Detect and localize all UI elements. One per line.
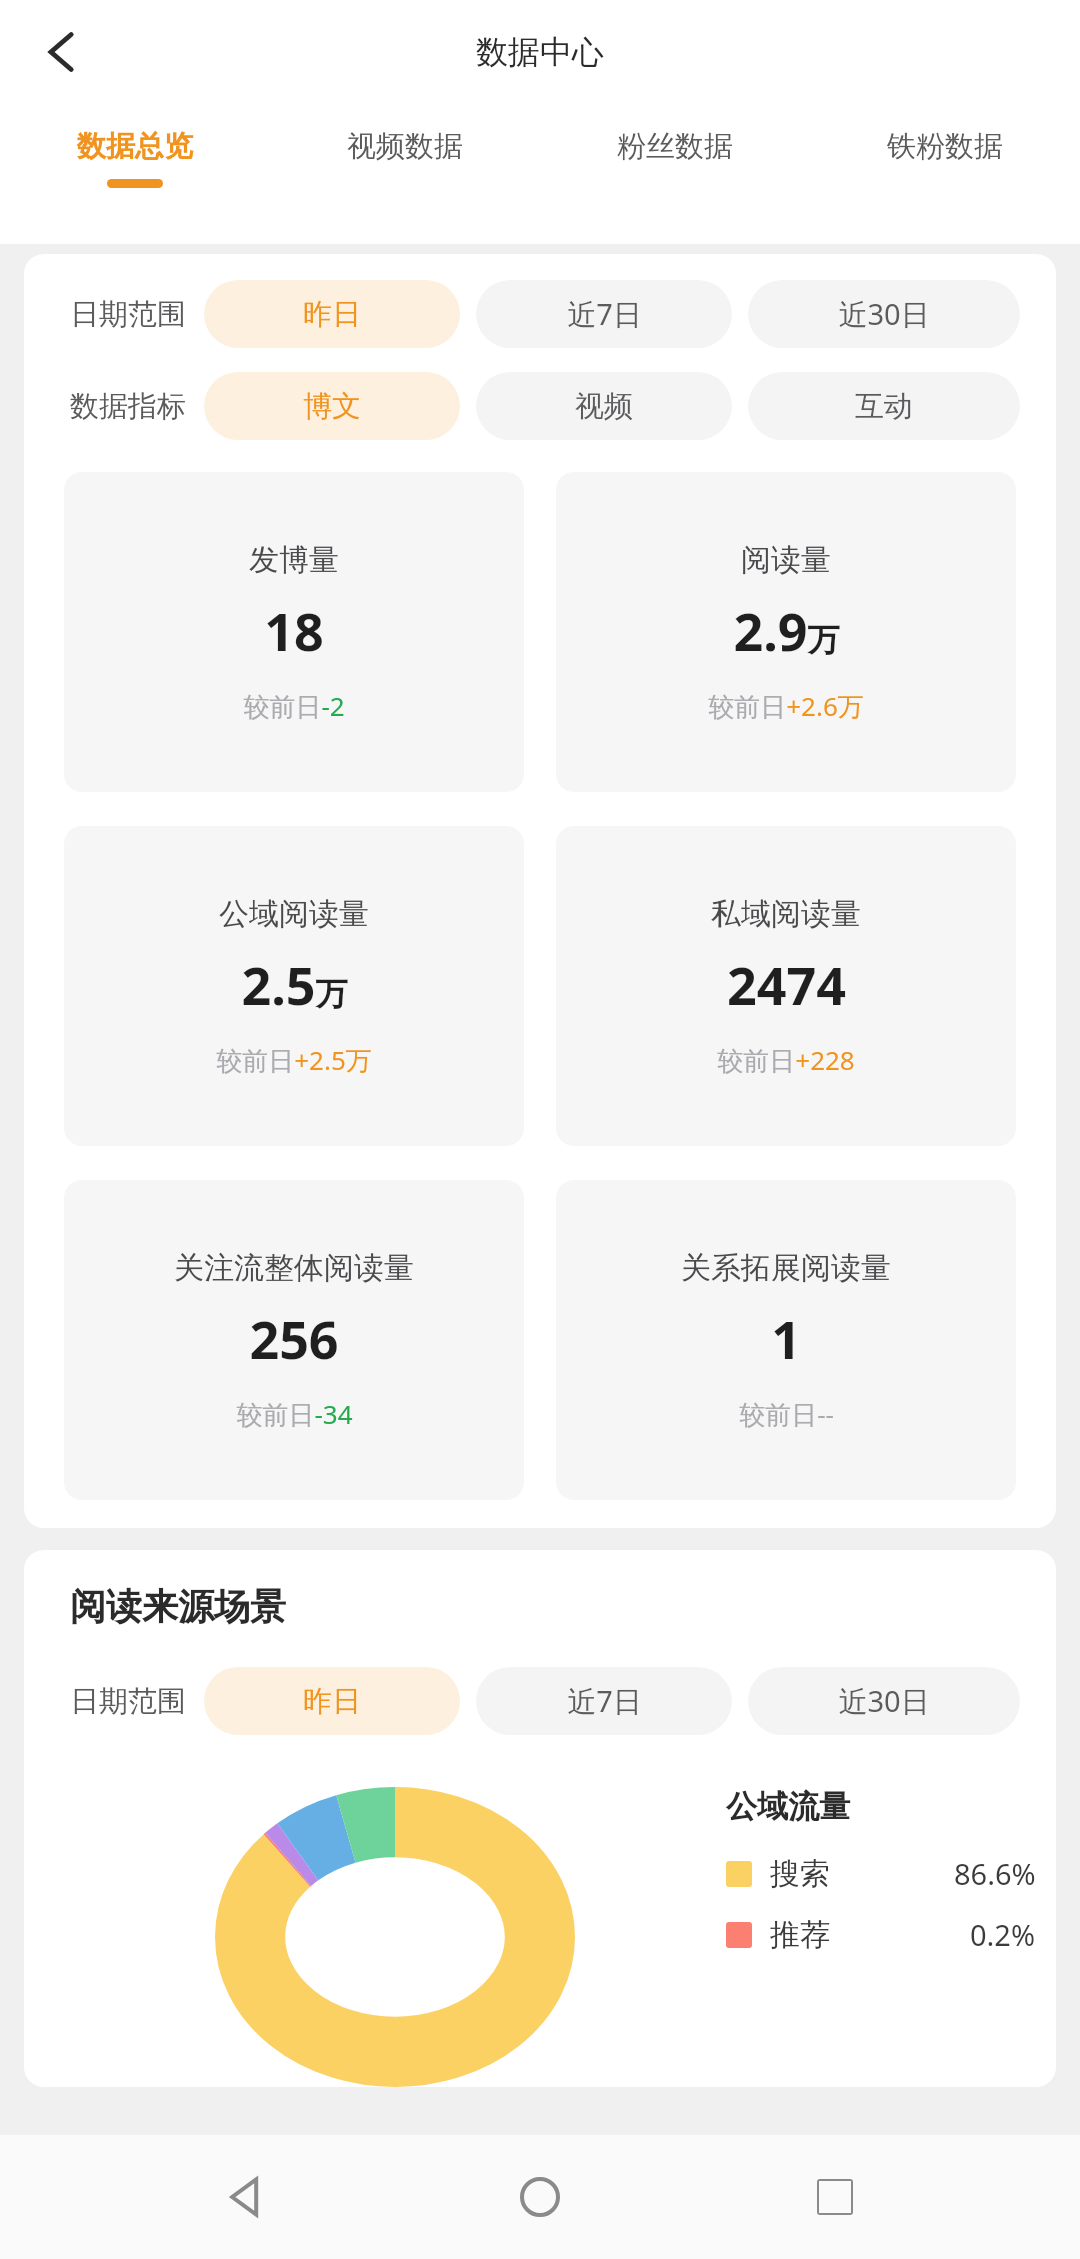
staticText: 近30日 <box>838 294 930 334</box>
staticText: 博文 <box>303 388 361 425</box>
staticText: 私域阅读量 <box>711 895 861 933</box>
button[interactable]: 粉丝数据 <box>540 104 810 244</box>
staticText: 粉丝数据 <box>617 128 733 165</box>
staticText: 阅读量 <box>741 541 831 579</box>
button[interactable]: 视频 <box>476 372 732 440</box>
staticText: 昨日 <box>303 1683 361 1720</box>
staticText: 数据中心 <box>476 32 604 72</box>
staticText: 日期范围 <box>70 1683 186 1720</box>
button[interactable]: 视频数据 <box>270 104 540 244</box>
staticText: 2.5万 <box>241 949 348 1020</box>
staticText: 1 <box>771 1303 801 1374</box>
button[interactable]: 近7日 <box>476 1667 732 1735</box>
staticText: 较前日+228 <box>717 1042 855 1078</box>
staticText: 较前日-2 <box>243 688 345 724</box>
button[interactable]: 昨日 <box>204 1667 460 1735</box>
button[interactable]: 互动 <box>748 372 1020 440</box>
staticText: 近30日 <box>838 1681 930 1721</box>
staticText: 互动 <box>855 388 913 425</box>
staticText: 较前日+2.5万 <box>216 1042 372 1078</box>
button[interactable]: Back <box>195 2147 295 2247</box>
button[interactable]: Recents <box>785 2147 885 2247</box>
staticText: 发博量 <box>249 541 339 579</box>
staticText: 铁粉数据 <box>887 128 1003 165</box>
button[interactable]: 博文 <box>204 372 460 440</box>
staticText: 较前日+2.6万 <box>708 688 864 724</box>
staticText: 0.2% <box>970 1915 1036 1954</box>
staticText: 2474 <box>727 949 846 1020</box>
button[interactable]: 昨日 <box>204 280 460 348</box>
staticText: 关系拓展阅读量 <box>681 1249 891 1287</box>
button[interactable]: 近30日 <box>748 1667 1020 1735</box>
button[interactable]: 发博量 <box>64 472 524 792</box>
staticText: 视频数据 <box>347 128 463 165</box>
staticText: 日期范围 <box>70 296 186 333</box>
staticText: 86.6% <box>954 1854 1036 1893</box>
button[interactable]: Back <box>22 12 102 92</box>
button[interactable]: 关系拓展阅读量 <box>556 1180 1016 1500</box>
staticText: 18 <box>264 595 324 666</box>
staticText: 推荐 <box>770 1916 830 1954</box>
staticText: 阅读来源场景 <box>70 1584 286 1629</box>
staticText: 2.9万 <box>733 595 840 666</box>
button[interactable]: 数据总览 <box>0 104 270 244</box>
button[interactable]: 私域阅读量 <box>556 826 1016 1146</box>
button[interactable]: Home <box>490 2147 590 2247</box>
button[interactable]: 近7日 <box>476 280 732 348</box>
button[interactable]: 近30日 <box>748 280 1020 348</box>
staticText: 较前日-34 <box>236 1396 353 1432</box>
staticText: 较前日-- <box>739 1396 834 1432</box>
staticText: 昨日 <box>303 296 361 333</box>
staticText: 关注流整体阅读量 <box>174 1249 414 1287</box>
button[interactable]: 关注流整体阅读量 <box>64 1180 524 1500</box>
staticText: 视频 <box>575 388 633 425</box>
staticText: 近7日 <box>567 294 642 334</box>
staticText: 数据总览 <box>77 128 193 165</box>
staticText: 公域流量 <box>726 1787 850 1826</box>
staticText: 256 <box>249 1303 339 1374</box>
button[interactable]: 公域阅读量 <box>64 826 524 1146</box>
staticText: 搜索 <box>770 1855 830 1893</box>
staticText: 数据指标 <box>70 388 186 425</box>
button[interactable]: 铁粉数据 <box>810 104 1080 244</box>
button[interactable]: 阅读量 <box>556 472 1016 792</box>
staticText: 近7日 <box>567 1681 642 1721</box>
staticText: 公域阅读量 <box>219 895 369 933</box>
